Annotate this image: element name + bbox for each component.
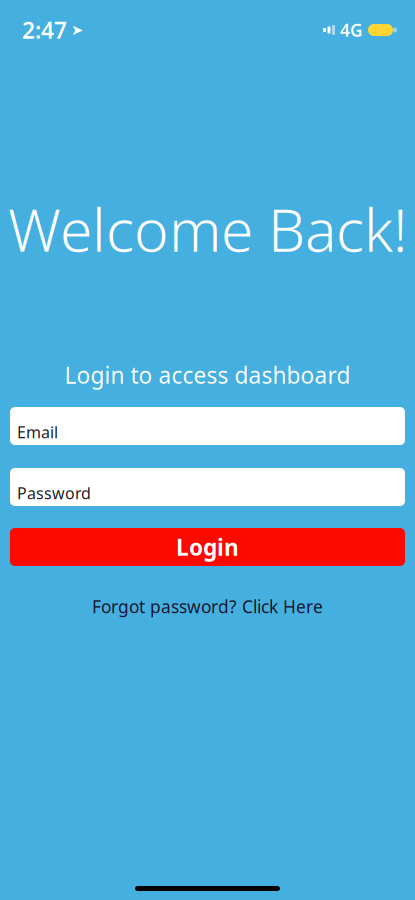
staticText: Email [17, 421, 58, 443]
staticText: 2:47 [22, 15, 67, 45]
staticText: Welcome Back! [8, 190, 407, 268]
button[interactable]: Password [10, 468, 405, 506]
button[interactable]: Forgot password? Click Here [80, 590, 335, 623]
staticText: 4G [340, 18, 363, 41]
button[interactable]: Login [10, 528, 405, 566]
staticText: Login to access dashboard [64, 360, 350, 390]
button[interactable]: Email [10, 407, 405, 445]
staticText: Login [176, 532, 239, 562]
staticText: ➤ [71, 22, 83, 38]
staticText: Password [17, 482, 91, 504]
staticText: Forgot password? Click Here [92, 595, 323, 618]
